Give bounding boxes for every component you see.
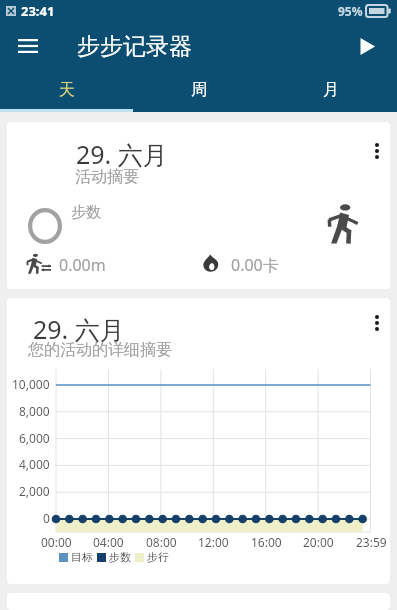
staticText: 您的活动的详细摘要 <box>28 340 172 360</box>
staticText: 4,000 <box>19 456 50 472</box>
button[interactable]: Menu <box>0 21 56 71</box>
staticText: 04:00 <box>93 534 124 550</box>
staticText: 29. 六月 <box>76 137 168 171</box>
button[interactable]: More options <box>360 306 390 340</box>
staticText: 23:59 <box>356 534 387 550</box>
button[interactable]: More options <box>360 134 390 168</box>
staticText: 目标 <box>71 550 93 564</box>
staticText: 08:00 <box>146 534 177 550</box>
staticText: 23:41 <box>21 2 55 20</box>
button[interactable]: 周 <box>133 71 265 112</box>
staticText: 2,000 <box>19 483 50 499</box>
staticText: 16:00 <box>251 534 282 550</box>
staticText: 0 <box>43 510 50 526</box>
staticText: 天 <box>59 80 75 100</box>
staticText: 00:00 <box>41 534 72 550</box>
staticText: 步数 <box>109 550 131 564</box>
staticText: 95% <box>338 3 363 19</box>
staticText: 0.00m <box>59 254 106 276</box>
staticText: 步行 <box>147 550 169 564</box>
staticText: 29. 六月 <box>33 312 125 346</box>
button[interactable]: 天 <box>0 71 133 112</box>
staticText: 步步记录器 <box>77 32 192 61</box>
staticText: 10,000 <box>12 376 50 392</box>
button[interactable]: Start <box>341 21 393 71</box>
staticText: 月 <box>323 80 339 100</box>
staticText: 活动摘要 <box>75 167 139 187</box>
staticText: 0.00卡 <box>231 254 279 276</box>
button[interactable]: 月 <box>265 71 397 112</box>
staticText: 6,000 <box>19 430 50 446</box>
staticText: 周 <box>191 80 207 100</box>
staticText: 20:00 <box>303 534 334 550</box>
staticText: 8,000 <box>19 403 50 419</box>
staticText: 12:00 <box>198 534 229 550</box>
staticText: 步数 <box>71 203 101 222</box>
